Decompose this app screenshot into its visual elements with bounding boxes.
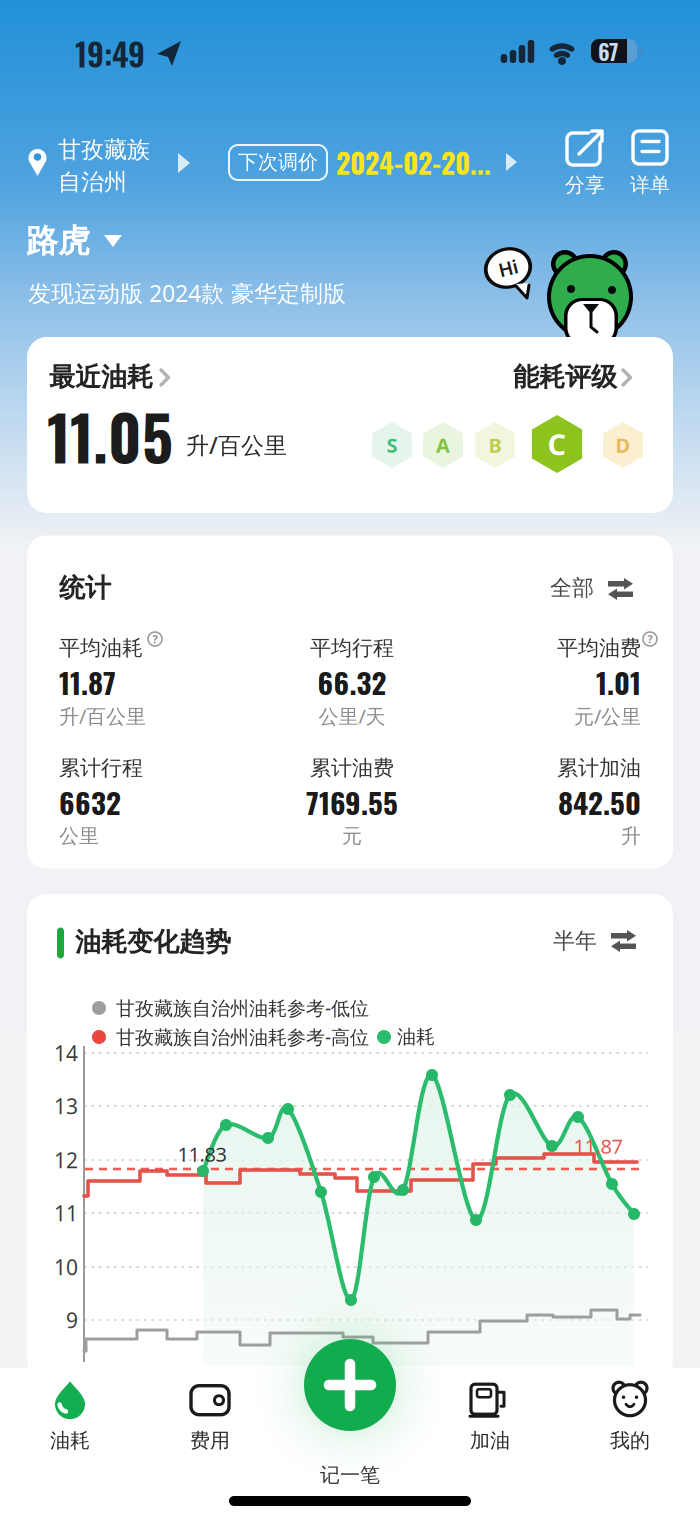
staticText: ? (647, 632, 652, 646)
button[interactable]: 半年 (551, 926, 637, 956)
staticText: 11.05 (47, 391, 173, 481)
staticText: 路虎 (26, 221, 90, 261)
staticText: 13 (54, 1092, 78, 1120)
button[interactable]: 路虎 (26, 221, 126, 261)
staticText: 最近油耗 (49, 361, 153, 393)
staticText: 累计行程 (59, 755, 143, 781)
staticText: 我的 (610, 1428, 650, 1453)
staticText: S (386, 432, 397, 458)
staticText: ? (152, 632, 157, 646)
button[interactable]: 甘孜藏族 (58, 137, 168, 195)
staticText: 油耗 (397, 1025, 435, 1049)
button[interactable]: 油耗 (25, 1380, 115, 1454)
button[interactable]: 能耗评级 (513, 355, 641, 399)
staticText: A (436, 432, 450, 458)
staticText: 记一笔 (320, 1463, 380, 1487)
staticText: 分享 (565, 173, 605, 197)
staticText: B (488, 432, 501, 458)
staticText: 详单 (630, 173, 670, 197)
staticText: 统计 (59, 572, 111, 604)
staticText: 11 (54, 1199, 78, 1227)
staticText: 费用 (190, 1428, 230, 1453)
staticText: 6632 (59, 780, 121, 823)
button[interactable]: 分享 (563, 131, 607, 197)
staticText: 油耗 (50, 1428, 90, 1453)
staticText: 公里 (59, 824, 99, 848)
button[interactable]: 记一笔 (304, 1339, 396, 1431)
staticText: 甘孜藏族 (58, 136, 150, 164)
staticText: 元 (342, 824, 362, 848)
staticText: 甘孜藏族自治州油耗参考-高位 (116, 1024, 369, 1050)
staticText: 2024-02-20... (336, 141, 491, 183)
button[interactable]: 我的 (585, 1380, 675, 1454)
staticText: 11.87 (573, 1133, 622, 1159)
staticText: 11.83 (177, 1141, 226, 1167)
staticText: 19:49 (75, 29, 145, 77)
staticText: 升 (621, 824, 641, 848)
button[interactable]: Hi (485, 249, 530, 287)
staticText: 能耗评级 (513, 361, 617, 393)
staticText: 9 (66, 1306, 78, 1334)
staticText: 累计加油 (557, 755, 641, 781)
staticText: 升/百公里 (59, 703, 146, 729)
button[interactable]: 加油 (445, 1380, 535, 1454)
staticText: 甘孜藏族自治州油耗参考-低位 (116, 995, 369, 1021)
staticText: 11.87 (59, 660, 116, 703)
staticText: 发现运动版 2024款 豪华定制版 (28, 278, 346, 308)
staticText: 平均行程 (310, 635, 394, 661)
staticText: 自治州 (58, 168, 127, 196)
button[interactable]: 详单 (628, 131, 672, 197)
staticText: 67 (598, 35, 618, 67)
staticText: 12 (54, 1146, 78, 1174)
staticText: D (615, 432, 630, 458)
staticText: 油耗变化趋势 (75, 926, 231, 958)
button[interactable]: 全部 (548, 573, 634, 603)
staticText: Hi (498, 255, 517, 281)
staticText: 842.50 (558, 780, 641, 823)
staticText: 升/百公里 (186, 430, 287, 460)
staticText: 14 (54, 1039, 78, 1067)
staticText: 累计油费 (310, 755, 394, 781)
staticText: 7169.55 (306, 780, 398, 823)
staticText: 下次调价 (238, 150, 318, 174)
button[interactable]: 最近油耗 (49, 355, 179, 399)
staticText: 平均油费 (557, 635, 641, 661)
staticText: 全部 (550, 574, 594, 601)
button[interactable]: 费用 (165, 1380, 255, 1454)
staticText: 公里/天 (318, 703, 385, 729)
button[interactable]: 下次调价 (229, 145, 521, 180)
staticText: 1.01 (596, 660, 641, 703)
staticText: 加油 (470, 1428, 510, 1453)
staticText: 元/公里 (574, 703, 641, 729)
staticText: 半年 (553, 927, 597, 954)
staticText: 10 (54, 1253, 78, 1281)
staticText: C (547, 425, 566, 463)
staticText: 66.32 (317, 660, 386, 703)
staticText: 平均油耗 (59, 635, 143, 661)
